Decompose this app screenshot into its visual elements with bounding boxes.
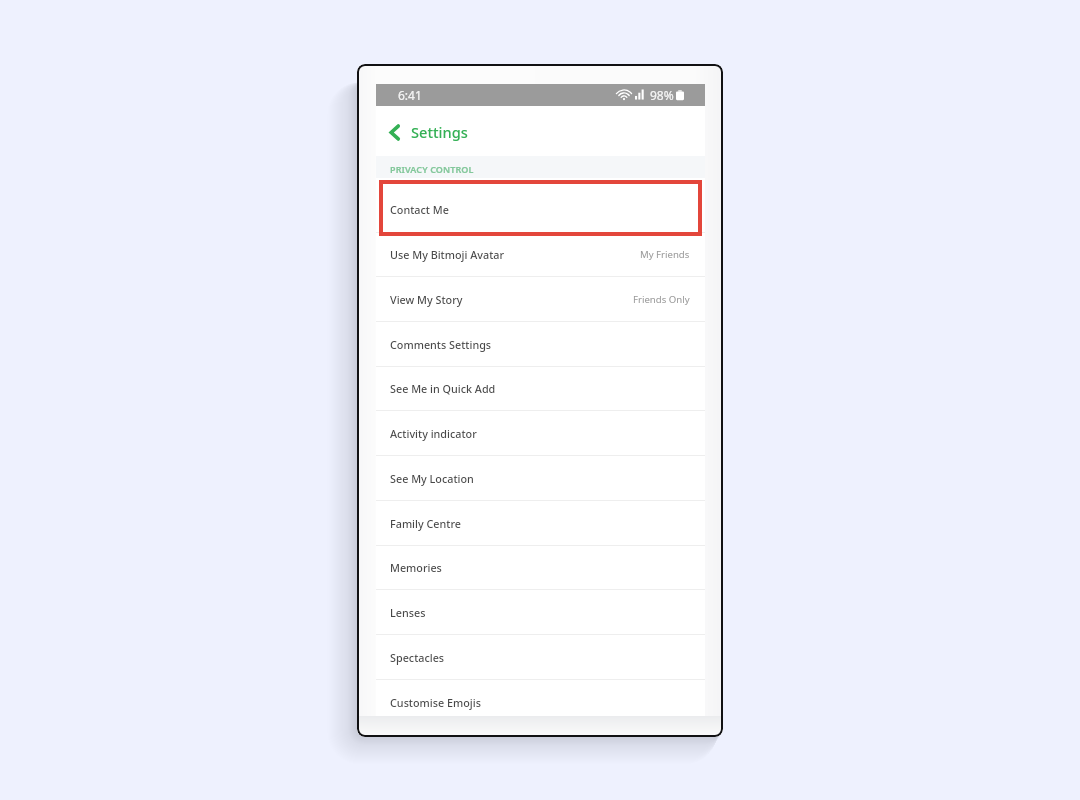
staticText: See Me in Quick Add: [390, 381, 496, 396]
staticText: Comments Settings: [390, 337, 492, 352]
staticText: See My Location: [390, 471, 474, 486]
staticText: View My Story: [390, 292, 463, 307]
staticText: Use My Bitmoji Avatar: [390, 247, 505, 262]
staticText: Friends Only: [633, 293, 690, 306]
button[interactable]: See My Location: [376, 456, 705, 500]
staticText: Lenses: [390, 605, 426, 620]
staticText: Spectacles: [390, 650, 445, 665]
staticText: Contact Me: [390, 202, 449, 217]
staticText: Customise Emojis: [390, 695, 481, 710]
button[interactable]: View My Story: [376, 277, 705, 321]
button[interactable]: Memories: [376, 546, 705, 589]
staticText: Memories: [390, 560, 442, 575]
staticText: Settings: [411, 122, 468, 142]
button[interactable]: Use My Bitmoji Avatar: [376, 233, 705, 276]
button[interactable]: Back: [376, 114, 482, 150]
staticText: Activity indicator: [390, 426, 477, 441]
staticText: Family Centre: [390, 516, 461, 531]
staticText: 6:41: [398, 87, 422, 103]
staticText: 98%: [650, 87, 674, 103]
button[interactable]: Family Centre: [376, 501, 705, 545]
staticText: My Friends: [640, 248, 690, 261]
button[interactable]: Spectacles: [376, 635, 705, 679]
button[interactable]: See Me in Quick Add: [376, 367, 705, 410]
button[interactable]: Comments Settings: [376, 322, 705, 366]
other: Back: [389, 124, 400, 141]
button[interactable]: Lenses: [376, 590, 705, 634]
button[interactable]: Activity indicator: [376, 411, 705, 455]
button[interactable]: Contact Me: [376, 187, 705, 232]
button[interactable]: Customise Emojis: [376, 680, 705, 716]
staticText: PRIVACY CONTROL: [390, 163, 474, 175]
